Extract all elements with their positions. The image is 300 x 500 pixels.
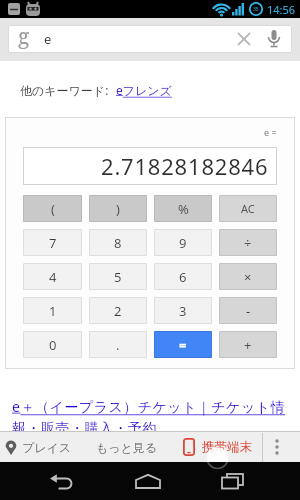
button[interactable] — [268, 30, 280, 48]
staticText: 5 — [114, 268, 122, 286]
button[interactable]: 7 — [23, 229, 82, 256]
staticText: 2 — [114, 302, 122, 320]
staticText: 2.71828182846 — [101, 151, 269, 181]
button[interactable] — [135, 474, 161, 489]
staticText: + — [244, 336, 252, 354]
button[interactable]: e＋（イープラス）チケット｜チケット情 報・販売・購入・予約 — [12, 397, 286, 431]
staticText: 携帯端末 — [202, 439, 252, 455]
button[interactable]: 0 — [23, 331, 82, 358]
button[interactable]: 2 — [89, 297, 147, 324]
button[interactable]: 4 — [23, 263, 82, 290]
staticText: e — [44, 30, 52, 48]
staticText: AC — [241, 201, 255, 216]
staticText: = — [179, 336, 187, 354]
staticText: 9 — [179, 234, 187, 252]
button[interactable]: 9 — [154, 229, 212, 256]
staticText: 1 — [49, 302, 57, 320]
staticText: 6 — [179, 268, 187, 286]
button[interactable]: . — [89, 331, 147, 358]
button[interactable] — [50, 473, 74, 490]
staticText: ÷ — [244, 234, 252, 252]
button[interactable]: = — [154, 331, 212, 358]
button[interactable]: 3 — [154, 297, 212, 324]
staticText: × — [244, 268, 252, 286]
button[interactable]: % — [154, 195, 212, 222]
button[interactable]: g — [8, 25, 292, 53]
staticText: 3 — [179, 302, 187, 320]
button[interactable]: - — [219, 297, 277, 324]
staticText: 35 — [253, 6, 259, 13]
staticText: g — [18, 22, 30, 50]
button[interactable]: プレイス — [0, 432, 72, 462]
staticText: 8 — [114, 234, 122, 252]
staticText: 14:56 — [267, 2, 296, 17]
button[interactable]: + — [219, 331, 277, 358]
button[interactable]: 8 — [89, 229, 147, 256]
staticText: もっと見る — [96, 440, 158, 455]
button[interactable]: ( — [23, 195, 82, 222]
button[interactable]: eフレンズ — [116, 82, 172, 98]
button[interactable]: AC — [219, 195, 277, 222]
staticText: ( — [51, 200, 55, 218]
staticText: - — [246, 302, 251, 320]
button[interactable]: 1 — [23, 297, 82, 324]
staticText: 他のキーワード: — [20, 82, 109, 98]
staticText: 7 — [49, 234, 57, 252]
staticText: ) — [116, 200, 120, 218]
button[interactable]: × — [219, 263, 277, 290]
staticText: プレイス — [22, 440, 72, 455]
staticText: e = — [264, 126, 277, 138]
button[interactable]: 5 — [89, 263, 147, 290]
staticText: 0 — [49, 336, 57, 354]
button[interactable]: 6 — [154, 263, 212, 290]
staticText: 4 — [49, 268, 57, 286]
button[interactable] — [263, 432, 291, 462]
button[interactable] — [237, 32, 251, 46]
staticText: % — [178, 200, 189, 218]
button[interactable]: 携帯端末 — [183, 432, 252, 462]
button[interactable]: もっと見る — [96, 432, 158, 462]
button[interactable]: ÷ — [219, 229, 277, 256]
staticText: . — [116, 336, 120, 354]
button[interactable] — [221, 473, 245, 490]
button[interactable]: ) — [89, 195, 147, 222]
